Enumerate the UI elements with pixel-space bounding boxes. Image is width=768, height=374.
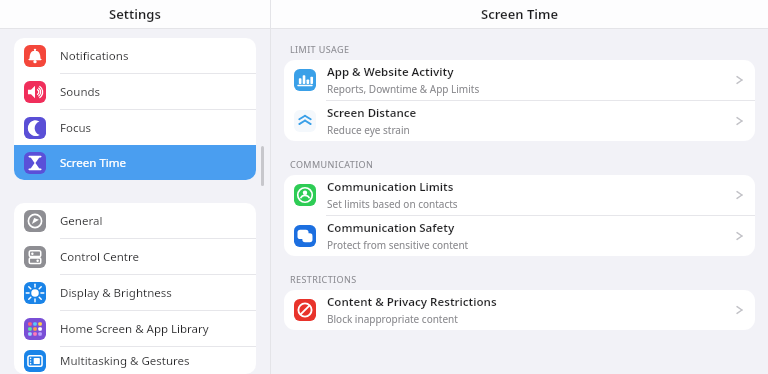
staticText: Content & Privacy Restrictions — [327, 294, 497, 310]
button[interactable]: Screen Distance — [284, 101, 755, 141]
staticText: Protect from sensitive content — [327, 238, 469, 252]
button[interactable]: Focus — [14, 110, 256, 145]
button[interactable]: Content & Privacy Restrictions — [284, 290, 755, 330]
staticText: Screen Distance — [327, 105, 417, 121]
staticText: App & Website Activity — [327, 64, 454, 80]
staticText: Set limits based on contacts — [327, 197, 458, 211]
staticText: Sounds — [60, 84, 101, 100]
staticText: Block inappropriate content — [327, 312, 458, 326]
staticText: Focus — [60, 120, 92, 136]
staticText: COMMUNICATION — [290, 158, 374, 170]
button[interactable]: Control Centre — [14, 239, 256, 274]
staticText: Communication Limits — [327, 179, 454, 195]
button[interactable]: Screen Time — [14, 145, 256, 180]
staticText: LIMIT USAGE — [290, 43, 350, 55]
button[interactable]: Multitasking & Gestures — [14, 347, 256, 374]
button[interactable]: Communication Limits — [284, 175, 755, 215]
staticText: Screen Time — [60, 155, 127, 171]
staticText: Control Centre — [60, 249, 139, 265]
staticText: Screen Time — [481, 5, 559, 23]
button[interactable]: Notifications — [14, 38, 256, 73]
button[interactable]: General — [14, 203, 256, 238]
button[interactable]: Sounds — [14, 74, 256, 109]
staticText: Multitasking & Gestures — [60, 353, 190, 369]
staticText: Home Screen & App Library — [60, 321, 209, 337]
button[interactable]: Display & Brightness — [14, 275, 256, 310]
staticText: RESTRICTIONS — [290, 273, 357, 285]
staticText: Reduce eye strain — [327, 123, 410, 137]
staticText: Communication Safety — [327, 220, 455, 236]
button[interactable]: Communication Safety — [284, 216, 755, 256]
staticText: Notifications — [60, 48, 129, 64]
staticText: Settings — [109, 5, 161, 23]
staticText: General — [60, 213, 103, 229]
staticText: Reports, Downtime & App Limits — [327, 82, 480, 96]
button[interactable]: Home Screen & App Library — [14, 311, 256, 346]
button[interactable]: App & Website Activity — [284, 60, 755, 100]
staticText: Display & Brightness — [60, 285, 172, 301]
